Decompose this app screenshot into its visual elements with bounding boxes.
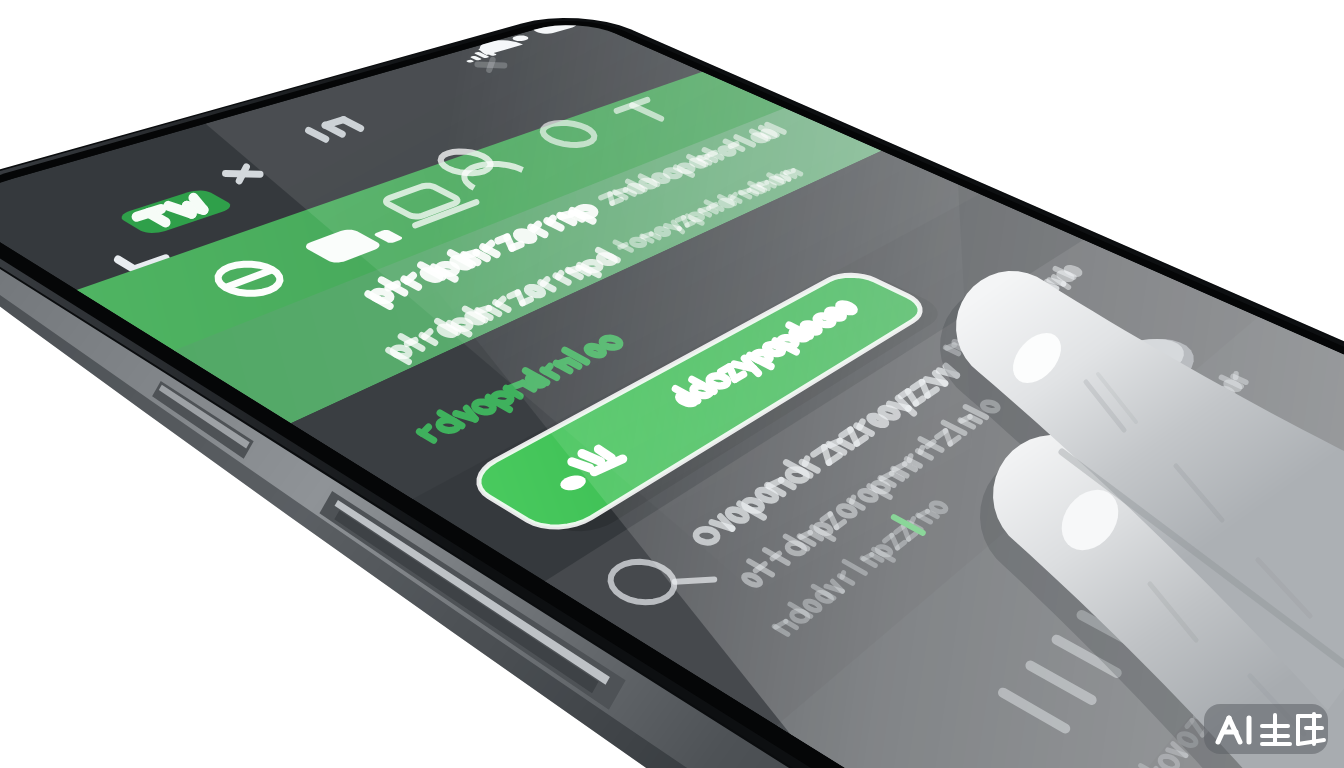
other: Finger tapping a green action button on … <box>0 0 1344 768</box>
